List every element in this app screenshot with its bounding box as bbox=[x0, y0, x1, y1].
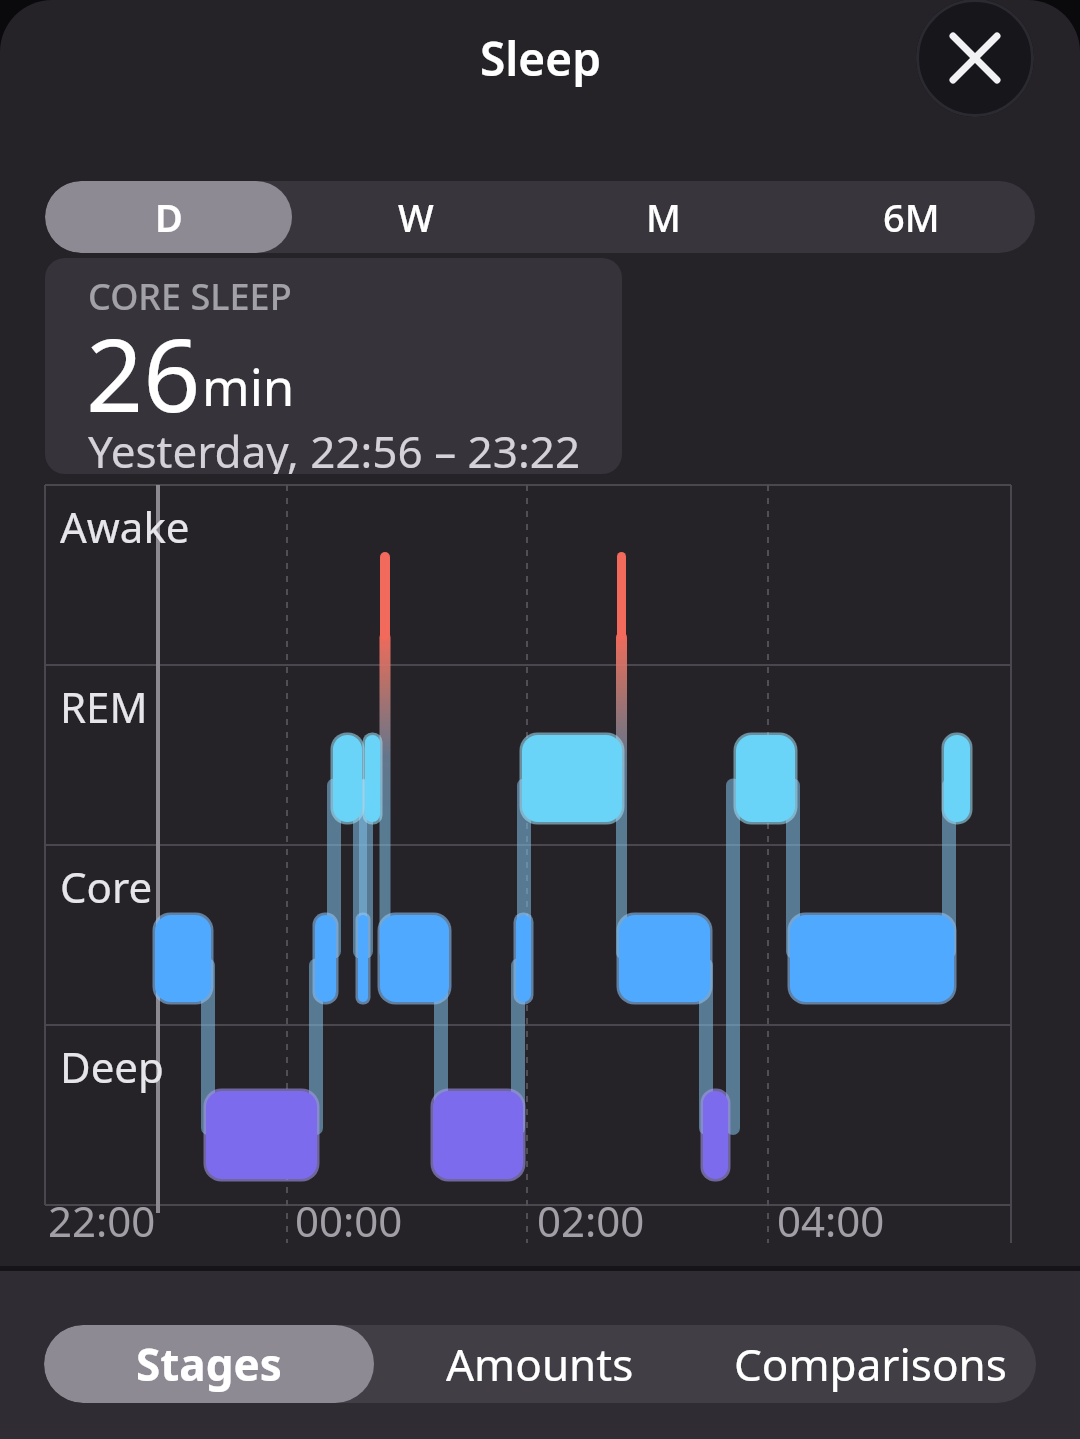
staticText: Awake bbox=[60, 498, 190, 555]
button[interactable]: D bbox=[45, 181, 292, 253]
staticText: 26 bbox=[86, 305, 201, 441]
staticText: M bbox=[646, 191, 681, 243]
button[interactable]: W bbox=[292, 181, 539, 253]
staticText: D bbox=[155, 191, 183, 243]
button[interactable]: M bbox=[539, 181, 787, 253]
staticText: Comparisons bbox=[734, 1334, 1007, 1394]
staticText: Amounts bbox=[446, 1334, 634, 1394]
staticText: Core bbox=[60, 858, 153, 915]
staticText: Sleep bbox=[480, 27, 601, 90]
button[interactable]: Comparisons bbox=[705, 1325, 1036, 1403]
staticText: CORE SLEEP bbox=[88, 272, 292, 321]
staticText: REM bbox=[60, 678, 148, 735]
staticText: W bbox=[398, 191, 434, 243]
staticText: Yesterday, 22:56 – 23:22 bbox=[88, 421, 581, 474]
staticText: Stages bbox=[136, 1334, 282, 1394]
staticText: 22:00 bbox=[48, 1192, 156, 1249]
staticText: min bbox=[202, 351, 295, 420]
staticText: 00:00 bbox=[295, 1192, 403, 1249]
staticText: Deep bbox=[60, 1038, 164, 1095]
button[interactable]: Amounts bbox=[374, 1325, 705, 1403]
button[interactable] bbox=[916, 0, 1034, 117]
button[interactable]: Stages bbox=[44, 1325, 374, 1403]
staticText: 6M bbox=[883, 191, 940, 243]
staticText: 04:00 bbox=[777, 1192, 885, 1249]
staticText: 02:00 bbox=[537, 1192, 645, 1249]
button[interactable]: 6M bbox=[787, 181, 1035, 253]
